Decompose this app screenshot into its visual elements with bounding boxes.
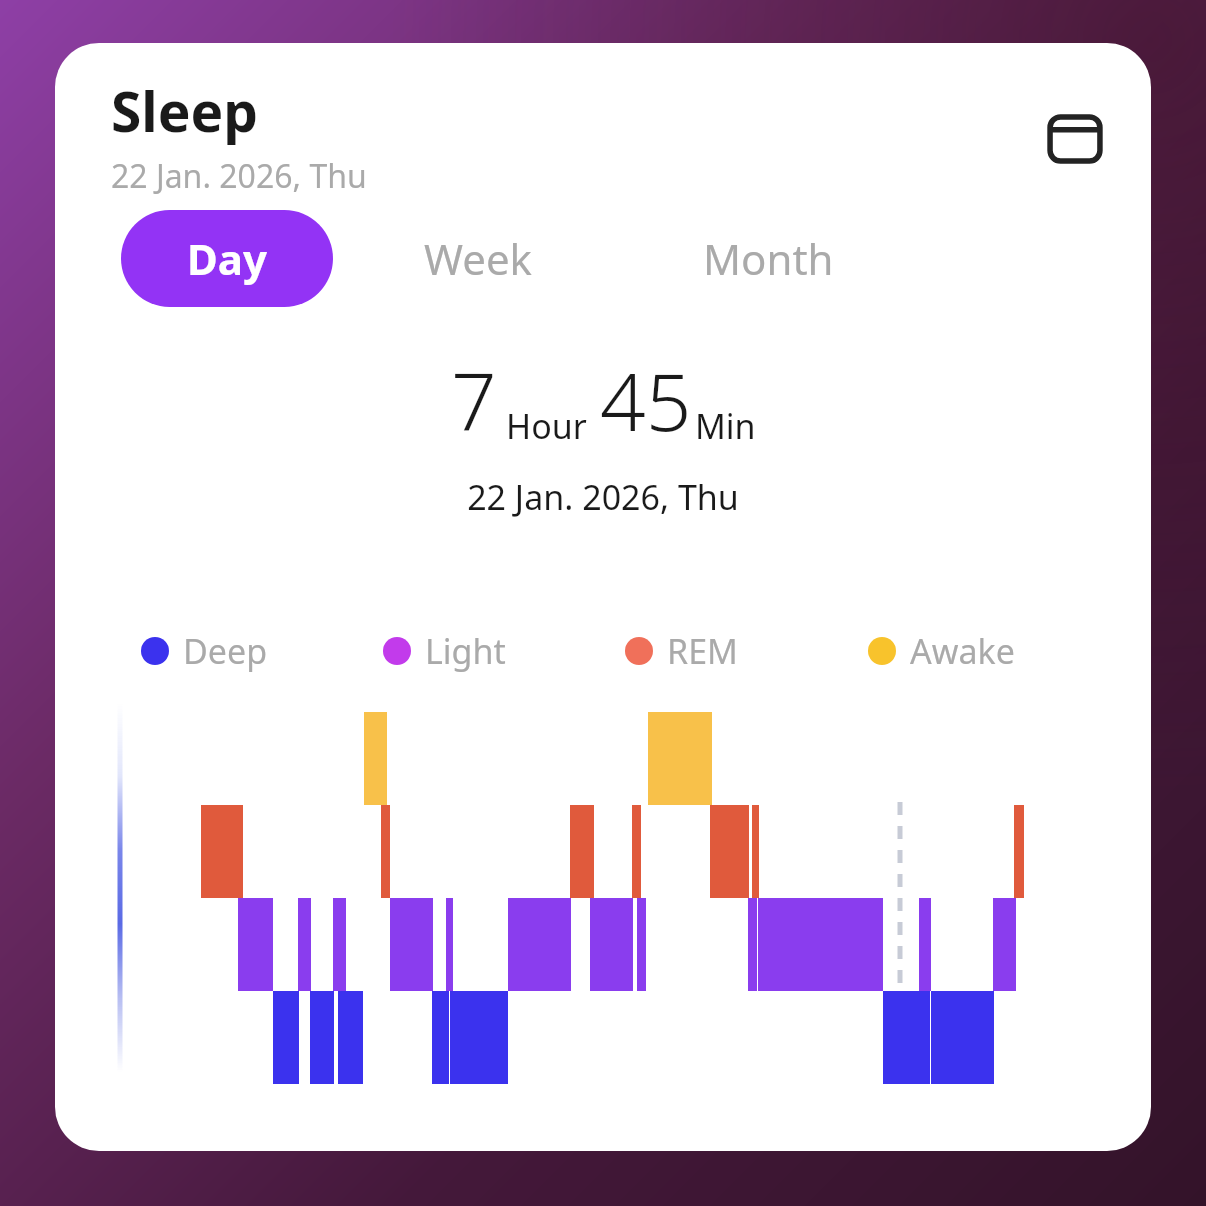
staticText: 45 [600, 345, 692, 454]
staticText: REM [667, 628, 738, 674]
staticText: 7 [451, 345, 497, 454]
staticText: 22 Jan. 2026, Thu [111, 154, 367, 198]
staticText: Deep [183, 628, 268, 674]
button[interactable]: Week [333, 210, 623, 307]
staticText: Week [424, 230, 533, 287]
button[interactable]: Day [121, 210, 333, 307]
staticText: Light [425, 628, 506, 674]
staticText: Sleep [111, 73, 259, 148]
button[interactable]: Month [623, 210, 913, 307]
staticText: Awake [910, 628, 1015, 674]
button[interactable]: Card view [1039, 103, 1111, 175]
staticText: 22 Jan. 2026, Thu [55, 474, 1151, 520]
staticText: Month [703, 230, 834, 287]
staticText: Hour [506, 403, 587, 449]
staticText: Min [695, 403, 756, 449]
staticText: Day [187, 230, 267, 287]
